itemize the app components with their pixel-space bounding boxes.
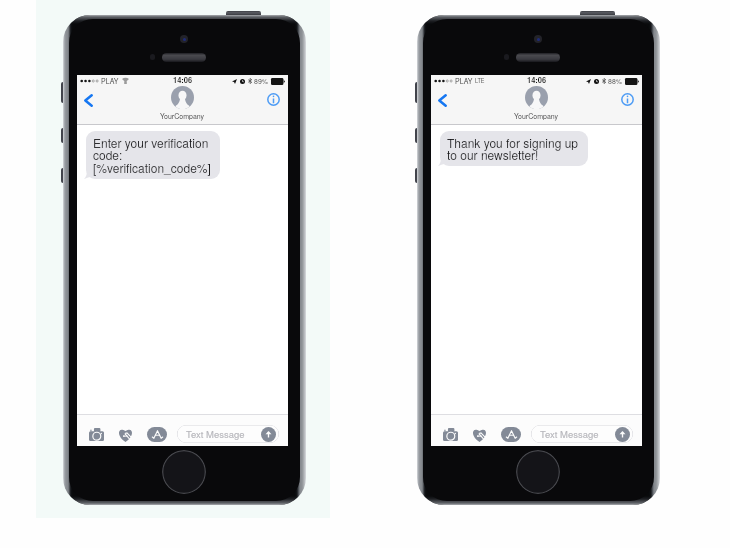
staticText: PLAY: [101, 76, 119, 86]
staticText: Text Message: [186, 427, 245, 441]
staticText: 14:06: [527, 75, 547, 86]
staticText: Enter your verification code: [%verifica…: [93, 134, 211, 177]
button[interactable]: App Store: [501, 427, 521, 442]
button[interactable]: Digital Touch: [470, 426, 488, 443]
button[interactable]: Back: [432, 87, 452, 113]
button[interactable]: Digital Touch: [116, 426, 134, 443]
button[interactable]: App Store: [147, 427, 167, 442]
button[interactable]: Info: [264, 90, 282, 108]
button[interactable]: Camera: [441, 426, 460, 443]
staticText: PLAY: [455, 76, 473, 86]
staticText: 89%: [254, 76, 269, 86]
staticText: YourCompany: [514, 111, 559, 121]
button[interactable]: Back: [78, 87, 98, 113]
staticText: Thank you for signing up to our newslett…: [447, 134, 579, 164]
staticText: 14:06: [173, 75, 193, 86]
button[interactable]: Text Message: [177, 425, 279, 443]
button[interactable]: Send: [615, 427, 630, 442]
staticText: 88%: [608, 76, 623, 86]
button[interactable]: Info: [618, 90, 636, 108]
button[interactable]: Text Message: [531, 425, 633, 443]
button[interactable]: Camera: [87, 426, 106, 443]
staticText: YourCompany: [160, 111, 205, 121]
button[interactable]: Send: [261, 427, 276, 442]
staticText: Text Message: [540, 427, 599, 441]
staticText: LTE: [475, 77, 485, 85]
